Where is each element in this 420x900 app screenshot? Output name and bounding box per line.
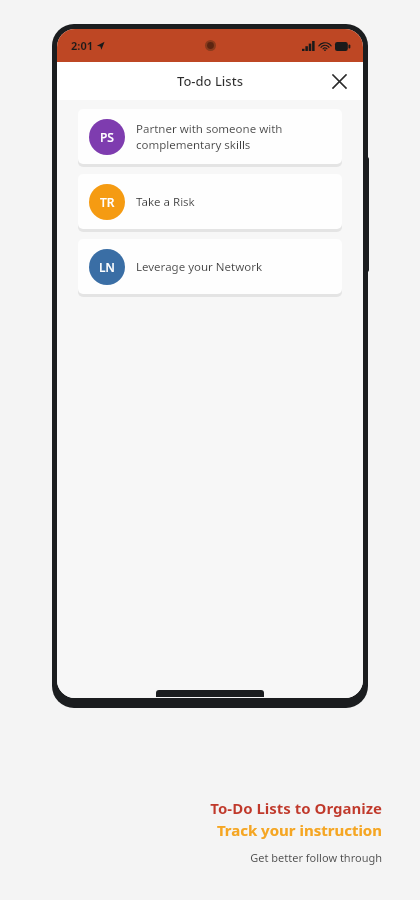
staticText: Take a Risk [136,194,195,210]
staticText: To-Do Lists to Organize [210,798,382,818]
staticText: PS [100,129,114,145]
staticText: LN [99,259,115,275]
staticText: TR [100,194,115,210]
staticText: To-do Lists [177,72,243,90]
button[interactable]: TR [78,174,342,229]
button[interactable]: PS [78,109,342,164]
button[interactable]: LN [78,239,342,294]
staticText: Get better follow through [250,850,382,865]
staticText: Partner with someone with complementary … [136,121,331,152]
button[interactable]: Close [324,66,354,96]
staticText: Leverage your Network [136,259,263,275]
staticText: 2:01 [71,38,93,53]
staticText: Track your instruction [216,820,382,840]
